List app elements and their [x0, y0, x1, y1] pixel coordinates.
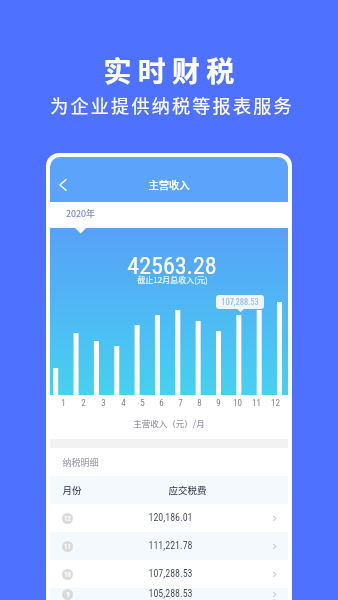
- staticText: 纳税明细: [62, 456, 99, 469]
- button[interactable]: 11: [50, 532, 288, 560]
- button[interactable]: Back: [50, 174, 72, 196]
- staticText: 截止12月总收入(元): [137, 274, 208, 286]
- staticText: 1: [61, 398, 66, 409]
- staticText: 105,288.53: [148, 588, 193, 600]
- staticText: 5: [140, 398, 145, 409]
- staticText: 111,221.78: [148, 540, 193, 552]
- staticText: 8: [197, 398, 202, 409]
- staticText: 11: [252, 398, 261, 409]
- staticText: 12: [64, 515, 71, 523]
- staticText: 6: [159, 398, 164, 409]
- staticText: 120,186.01: [148, 512, 193, 524]
- staticText: 10: [64, 571, 71, 579]
- button[interactable]: 9: [50, 588, 288, 600]
- staticText: 107,288.53: [221, 297, 259, 307]
- staticText: 3: [101, 398, 106, 409]
- staticText: 42563.28: [127, 252, 217, 280]
- staticText: 7: [178, 398, 183, 409]
- button[interactable]: 10: [50, 560, 288, 588]
- staticText: 10: [233, 398, 242, 409]
- staticText: 9: [216, 398, 221, 409]
- staticText: 实时财税: [103, 50, 241, 91]
- staticText: 2: [81, 398, 86, 409]
- button[interactable]: 2020年: [66, 207, 95, 220]
- staticText: 月份: [62, 483, 82, 497]
- staticText: 107,288.53: [148, 568, 193, 580]
- button[interactable]: 12: [50, 504, 288, 532]
- staticText: 主营收入: [148, 177, 190, 192]
- staticText: 4: [121, 398, 126, 409]
- staticText: 为企业提供纳税等报表服务: [50, 92, 294, 118]
- staticText: 11: [64, 543, 71, 551]
- staticText: 9: [66, 591, 70, 599]
- staticText: 主营收入（元）/月: [133, 417, 205, 429]
- staticText: 2020年: [66, 207, 95, 220]
- staticText: 应交税费: [168, 483, 207, 497]
- staticText: 12: [271, 398, 280, 409]
